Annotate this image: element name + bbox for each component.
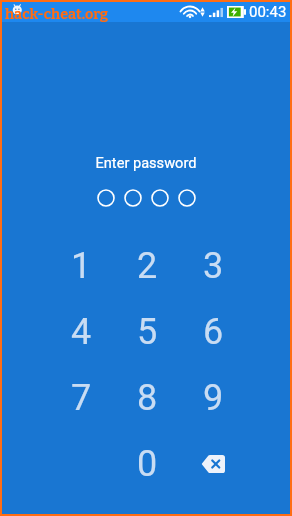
staticText: 6	[203, 311, 224, 353]
button[interactable]: 8	[114, 365, 180, 431]
other: Mobile signal	[209, 6, 223, 18]
other: Battery charging	[227, 6, 246, 18]
button[interactable]: 2	[114, 233, 180, 299]
button[interactable]: 0	[114, 431, 180, 497]
staticText: 00:43	[249, 3, 287, 21]
staticText: Enter password	[2, 154, 290, 171]
button[interactable]: 9	[180, 365, 246, 431]
staticText: 8	[137, 377, 158, 419]
staticText: 2	[137, 245, 158, 287]
button[interactable]: 3	[180, 233, 246, 299]
button[interactable]: Delete	[180, 431, 246, 497]
other: Wi-Fi	[182, 6, 198, 18]
staticText: 0	[137, 443, 158, 485]
staticText: 4	[71, 311, 92, 353]
staticText: hack-cheat.org	[5, 6, 109, 23]
staticText: 1	[71, 245, 92, 287]
staticText: 9	[203, 377, 224, 419]
button[interactable]: 7	[48, 365, 114, 431]
staticText: 7	[71, 377, 92, 419]
button[interactable]: 1	[48, 233, 114, 299]
button[interactable]: 5	[114, 299, 180, 365]
staticText: 5	[137, 311, 158, 353]
staticText: 3	[203, 245, 224, 287]
button[interactable]: 6	[180, 299, 246, 365]
button[interactable]: 4	[48, 299, 114, 365]
